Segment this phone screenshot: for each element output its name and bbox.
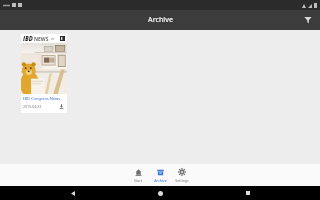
staticText: .de	[50, 37, 55, 41]
button[interactable]: Start	[128, 164, 148, 186]
staticText: NEWS	[34, 36, 49, 43]
staticText: 2019-04-23	[23, 104, 42, 109]
staticText: Archive	[148, 15, 173, 25]
button[interactable]: Back	[58, 186, 88, 200]
button[interactable]: Home	[145, 186, 175, 200]
button[interactable]: Download	[58, 103, 65, 110]
button[interactable]: Recent apps	[233, 186, 263, 200]
staticText: iBD	[23, 35, 33, 43]
button[interactable]: Archive	[150, 164, 170, 186]
button[interactable]: iBD	[21, 34, 67, 113]
button[interactable]: Filter	[300, 12, 316, 28]
staticText: Start	[134, 178, 142, 183]
staticText: IBD Congress News	[23, 96, 61, 101]
staticText: Archive	[154, 178, 167, 183]
button[interactable]: Settings	[172, 164, 192, 186]
staticText: Settings	[175, 178, 189, 183]
